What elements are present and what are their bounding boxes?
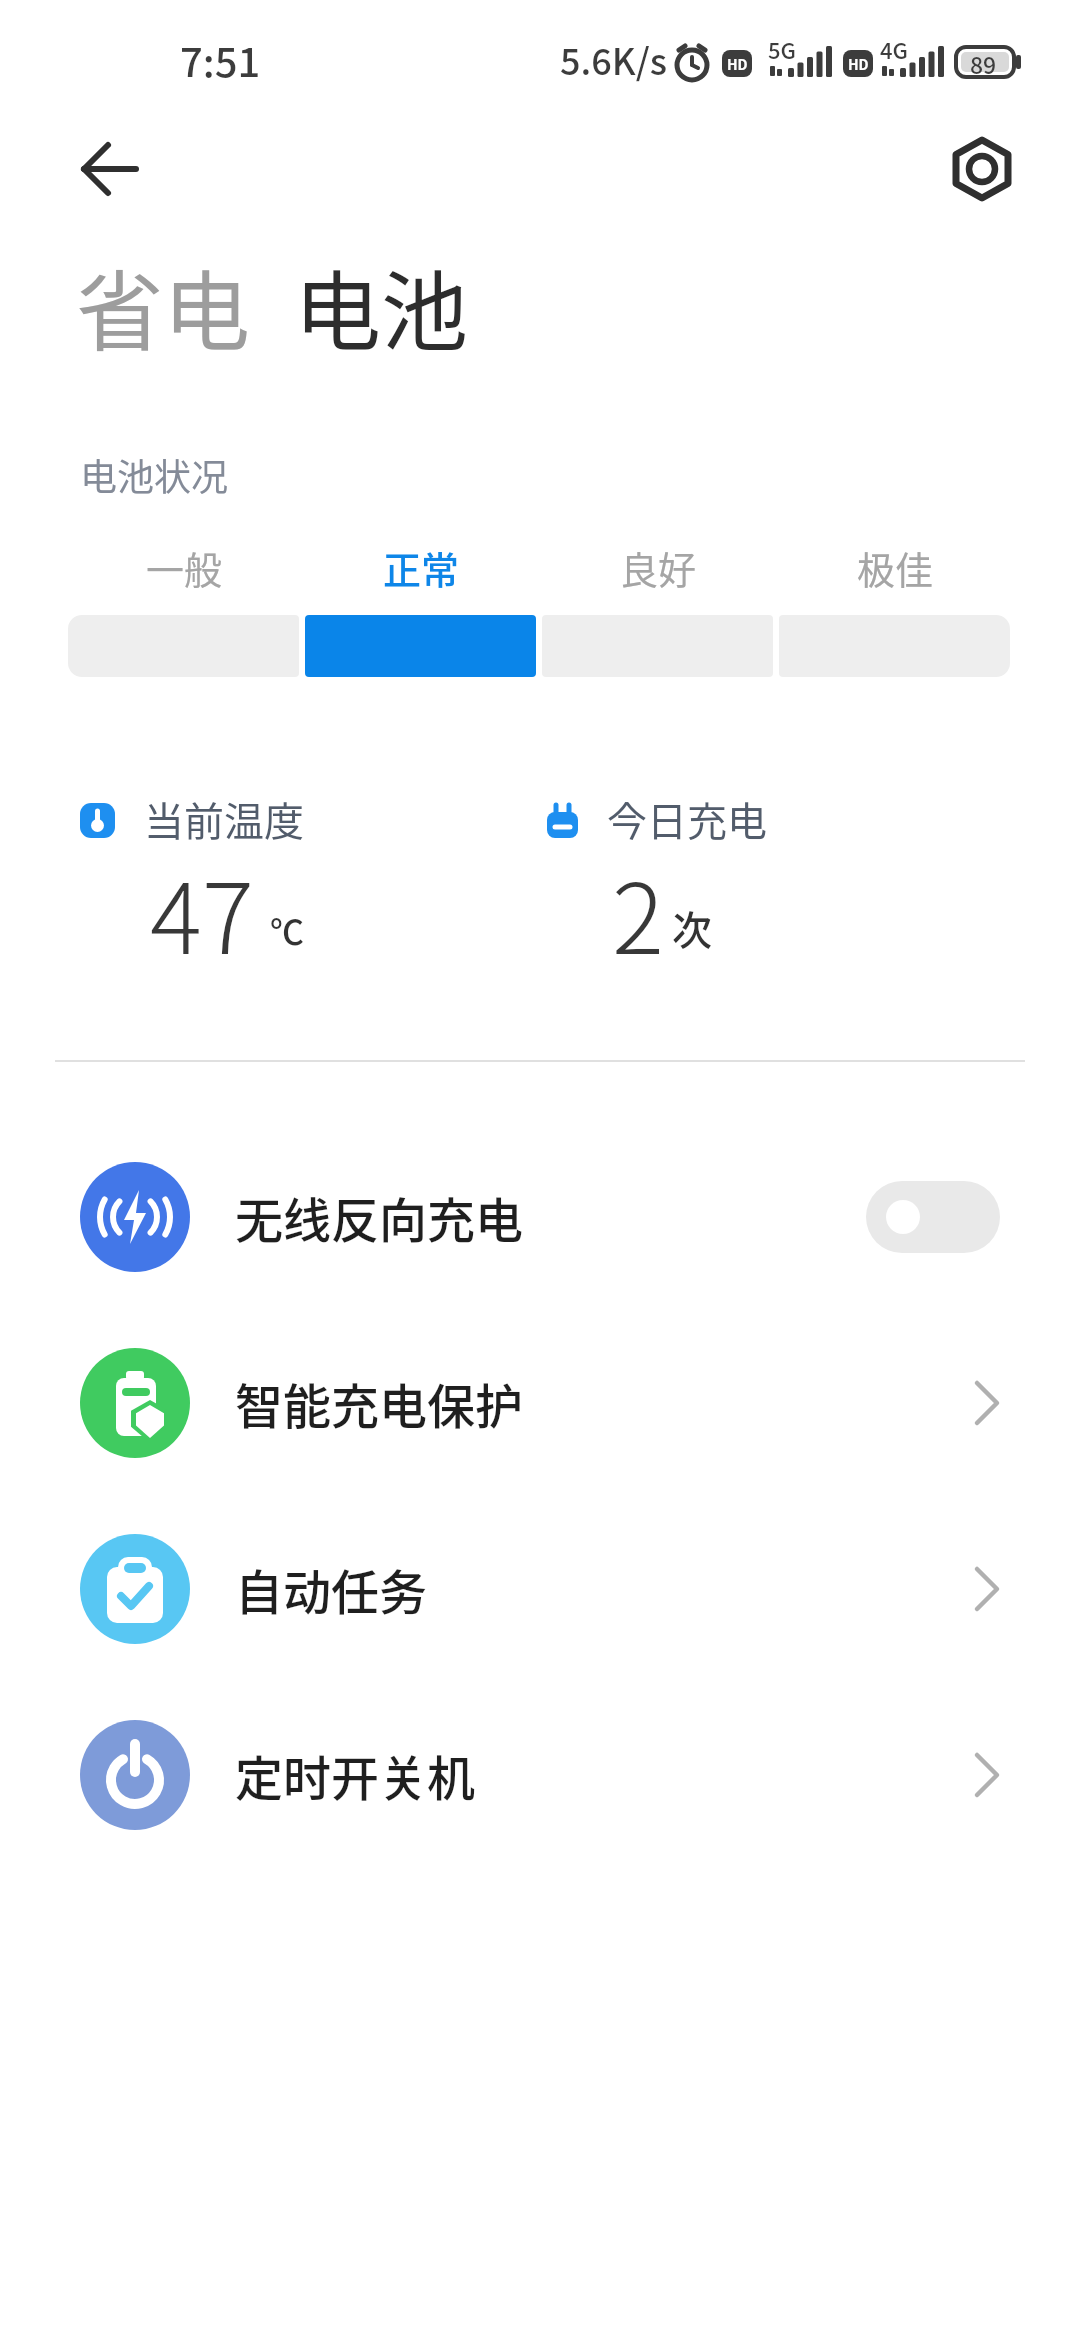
staticText: 极佳 bbox=[857, 540, 934, 595]
staticText: ℃ bbox=[270, 906, 304, 955]
staticText: 无线反向充电 bbox=[235, 1182, 524, 1252]
staticText: 良好 bbox=[620, 540, 697, 595]
staticText: 智能充电保护 bbox=[235, 1368, 524, 1438]
staticText: 电池状况 bbox=[80, 448, 228, 502]
button[interactable]: 定时开关机 bbox=[0, 1682, 1080, 1868]
staticText: 5.6K/s bbox=[560, 33, 667, 85]
staticText: 今日充电 bbox=[607, 790, 767, 848]
button[interactable]: 无线反向充电 bbox=[0, 1124, 1080, 1310]
staticText: 47 bbox=[150, 841, 254, 981]
staticText: 次 bbox=[672, 899, 712, 957]
staticText: 89 bbox=[970, 47, 997, 80]
staticText: 2 bbox=[612, 841, 664, 981]
staticText: HD bbox=[727, 54, 748, 74]
staticText: 定时开关机 bbox=[235, 1740, 476, 1810]
staticText: HD bbox=[848, 54, 869, 74]
staticText: 一般 bbox=[146, 540, 223, 595]
staticText: 4G bbox=[880, 33, 908, 65]
button[interactable]: 省电 bbox=[76, 243, 250, 369]
staticText: 7:51 bbox=[180, 31, 261, 89]
button[interactable] bbox=[950, 136, 1016, 202]
staticText: 正常 bbox=[383, 540, 460, 595]
button[interactable] bbox=[305, 615, 536, 677]
staticText: 自动任务 bbox=[235, 1554, 428, 1624]
staticText: 5G bbox=[768, 33, 796, 65]
button[interactable]: 电池 bbox=[294, 243, 468, 369]
button[interactable] bbox=[60, 130, 140, 210]
staticText: 当前温度 bbox=[144, 790, 304, 848]
button[interactable]: 智能充电保护 bbox=[0, 1310, 1080, 1496]
button[interactable] bbox=[866, 1181, 1000, 1253]
button[interactable]: 自动任务 bbox=[0, 1496, 1080, 1682]
